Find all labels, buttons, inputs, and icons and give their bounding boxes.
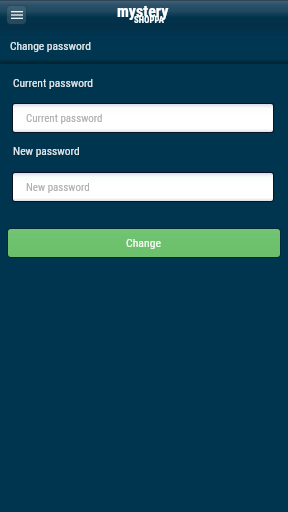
staticText: New password	[13, 144, 80, 157]
staticText: Change password	[10, 39, 91, 52]
staticText: New password	[26, 181, 90, 194]
button[interactable]: Open navigation menu	[7, 6, 26, 24]
button[interactable]: Current password	[13, 104, 273, 132]
staticText: Change	[126, 236, 161, 250]
staticText: Current password	[13, 76, 94, 89]
button[interactable]: New password	[13, 173, 273, 201]
staticText: mystery	[117, 2, 169, 21]
staticText: Current password	[26, 112, 103, 125]
staticText: SHOPPA	[134, 15, 165, 25]
button[interactable]: Change	[8, 229, 280, 257]
